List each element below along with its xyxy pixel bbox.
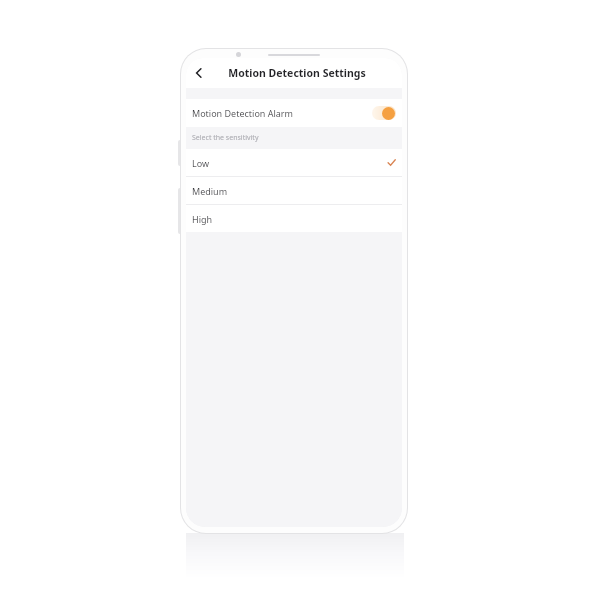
staticText: Motion Detection Settings bbox=[228, 66, 366, 80]
staticText: Medium bbox=[192, 185, 228, 197]
button[interactable]: Back bbox=[186, 60, 212, 86]
staticText: Motion Detection Alarm bbox=[192, 107, 293, 119]
staticText: High bbox=[192, 213, 213, 225]
button[interactable]: High bbox=[186, 205, 402, 232]
button[interactable]: Motion Detection Alarm toggle bbox=[372, 106, 396, 120]
button[interactable]: Motion Detection Alarm bbox=[186, 99, 402, 127]
staticText: Select the sensitivity bbox=[192, 133, 259, 143]
button[interactable]: Low bbox=[186, 149, 402, 176]
button[interactable]: Medium bbox=[186, 177, 402, 204]
staticText: Low bbox=[192, 157, 210, 169]
